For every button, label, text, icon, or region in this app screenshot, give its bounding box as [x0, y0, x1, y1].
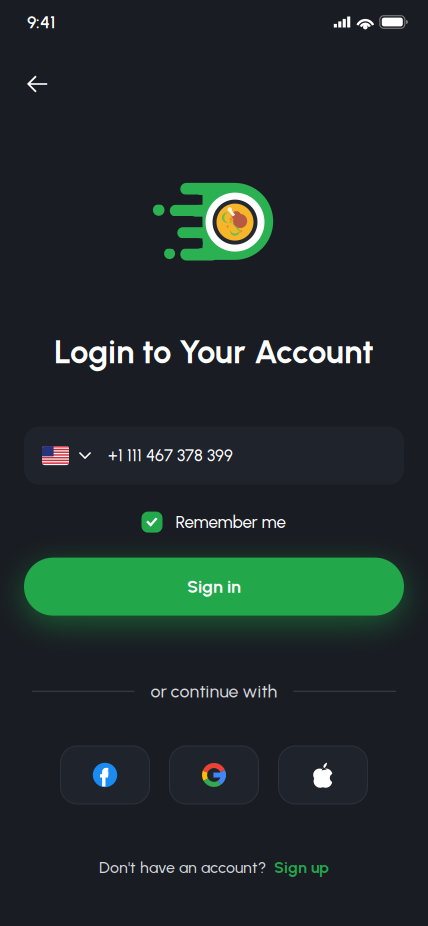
button[interactable]: Back [16, 64, 58, 104]
staticText: Sign in [187, 576, 241, 597]
staticText: Login to Your Account [54, 332, 374, 372]
staticText: Don't have an account? [99, 858, 266, 877]
staticText: +1 111 467 378 399 [108, 446, 233, 465]
staticText: 9:41 [27, 11, 55, 32]
button[interactable]: Continue with Facebook [60, 746, 149, 804]
button[interactable]: +1 111 467 378 399 [24, 427, 404, 485]
staticText: or continue with [150, 681, 277, 702]
button[interactable]: Sign up [274, 858, 329, 877]
staticText: Remember me [175, 512, 286, 532]
staticText: Sign up [274, 858, 329, 877]
button[interactable]: Sign in [24, 558, 404, 616]
button[interactable]: Continue with Apple [278, 746, 367, 804]
button[interactable]: Continue with Google [169, 746, 258, 804]
